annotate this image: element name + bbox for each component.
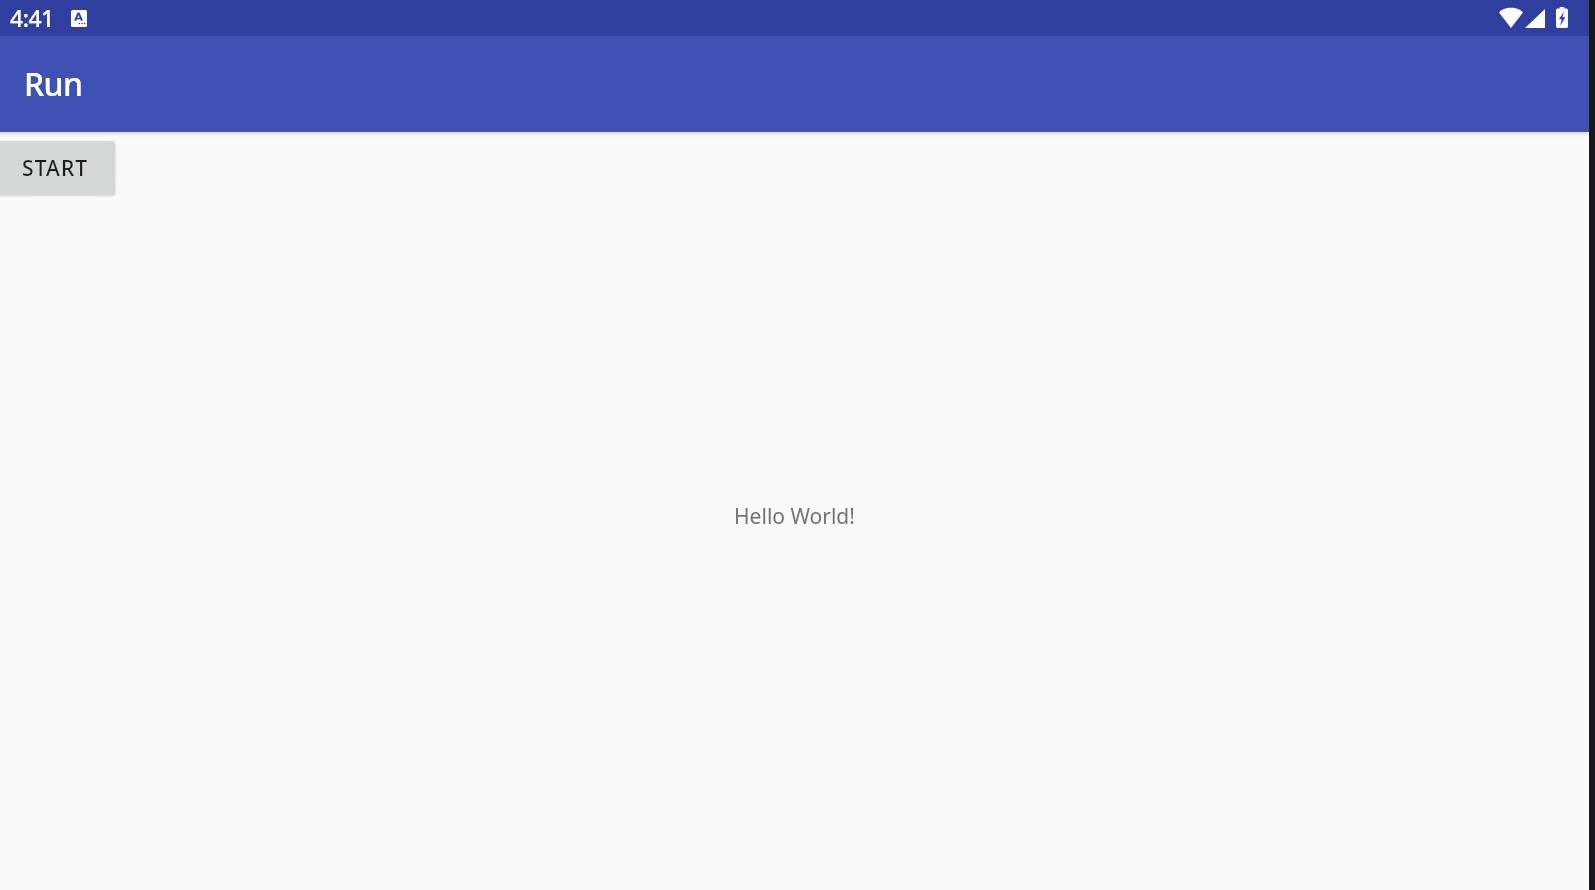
staticText: Hello World! bbox=[734, 502, 855, 531]
staticText: START bbox=[22, 154, 89, 183]
staticText: 4:41 bbox=[10, 2, 54, 33]
button[interactable]: START bbox=[0, 141, 115, 195]
other: Wi-Fi bbox=[1499, 6, 1523, 28]
staticText: Run bbox=[24, 62, 83, 106]
other: App notification bbox=[71, 10, 87, 27]
other: Mobile signal bbox=[1525, 9, 1545, 28]
other: Battery charging bbox=[1556, 7, 1568, 28]
